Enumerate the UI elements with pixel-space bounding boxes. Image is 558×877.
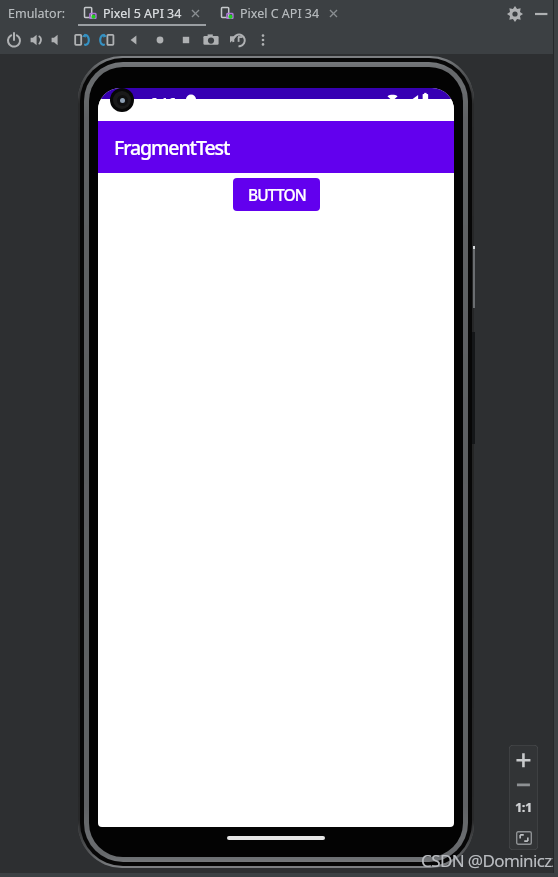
button[interactable]: BUTTON — [233, 178, 320, 211]
button[interactable]: Back — [124, 30, 144, 50]
staticText: 1:1 — [515, 798, 532, 816]
staticText: Pixel 5 API 34 — [103, 5, 182, 22]
staticText: Pixel C API 34 — [240, 5, 320, 22]
button[interactable]: Pixel C API 34 — [220, 0, 339, 27]
button[interactable]: Settings — [505, 4, 525, 24]
button[interactable]: Home — [150, 30, 170, 50]
button[interactable]: Volume down — [48, 30, 68, 50]
button[interactable]: Close tab — [328, 8, 339, 19]
button[interactable]: Rotate right — [97, 30, 117, 50]
staticText: BUTTON — [248, 184, 306, 205]
button[interactable]: Rotate left — [72, 30, 92, 50]
button[interactable]: Overview — [176, 30, 196, 50]
button[interactable]: Minimize — [531, 4, 551, 24]
button[interactable]: Zoom in — [512, 748, 534, 770]
button[interactable]: Pixel 5 API 34 — [83, 0, 201, 27]
button[interactable]: More — [253, 30, 273, 50]
button[interactable]: Power — [4, 30, 24, 50]
button[interactable]: Zoom out — [512, 775, 534, 797]
button[interactable]: Close tab — [190, 8, 201, 19]
button[interactable]: Volume up — [27, 30, 47, 50]
staticText: 6:16 — [150, 93, 176, 99]
staticText: FragmentTest — [114, 134, 230, 161]
button[interactable]: History — [228, 30, 248, 50]
button[interactable]: 1:1 — [511, 794, 536, 819]
staticText: CSDN @Dominiczz — [421, 849, 558, 872]
button[interactable]: Screenshot — [201, 30, 221, 50]
staticText: Emulator: — [8, 5, 66, 22]
button[interactable]: Fit to screen — [516, 831, 532, 845]
